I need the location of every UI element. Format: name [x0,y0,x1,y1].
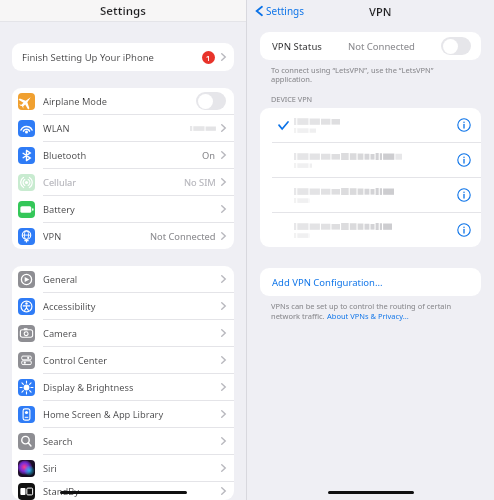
staticText: About VPNs & Privacy... [327,311,409,321]
button[interactable]: Search [12,428,234,454]
staticText: General [43,273,78,286]
staticText: Airplane Mode [43,95,107,108]
button[interactable]: Control Center [12,347,234,373]
button[interactable]: Siri [12,455,234,481]
staticText: Display & Brightness [43,381,134,394]
staticText: Add VPN Configuration... [272,276,383,289]
button[interactable]: Toggle [196,92,226,110]
staticText: Settings [100,3,146,19]
button[interactable]: Accessibility [12,293,234,319]
button[interactable]: Toggle [441,37,471,55]
button[interactable]: More Info [457,223,471,237]
button[interactable]: General [12,266,234,292]
button[interactable]: Finish Setting Up Your iPhone [12,43,234,71]
button[interactable]: Airplane Mode [12,88,234,114]
button[interactable]: More Info [260,143,481,177]
button[interactable]: Cellular [12,169,234,195]
staticText: Battery [43,203,75,216]
staticText: DEVICE VPN [271,94,313,104]
button[interactable]: Add VPN Configuration... [260,268,481,296]
button[interactable]: More Info [260,178,481,212]
staticText: Cellular [43,176,77,189]
button[interactable]: WLAN [12,115,234,141]
staticText: No SIM [184,176,216,189]
staticText: VPN [43,230,62,243]
button[interactable]: Battery [12,196,234,222]
button[interactable]: Home Screen & App Library [12,401,234,427]
staticText: 1 [206,53,211,63]
button[interactable]: More Info [260,108,481,142]
staticText: WLAN [43,122,70,135]
staticText: VPN Status [272,40,322,53]
staticText: To connect using “LetsVPN”, use the “Let… [271,65,434,85]
staticText: Control Center [43,354,107,367]
staticText: VPN [369,4,392,19]
staticText: Bluetooth [43,149,87,162]
button[interactable]: More Info [457,188,471,202]
staticText: Not Connected [150,230,216,243]
staticText: VPNs can be set up to control the routin… [271,301,452,311]
staticText: Camera [43,327,77,340]
staticText: On [202,149,216,162]
staticText: Home Screen & App Library [43,408,164,421]
staticText: Search [43,435,73,448]
button[interactable]: More Info [260,213,481,247]
button[interactable]: VPN [12,223,234,249]
staticText: Settings [266,4,305,18]
button[interactable]: More Info [457,153,471,167]
staticText: Not Connected [348,40,415,53]
button[interactable]: Bluetooth [12,142,234,168]
staticText: StandBy [43,485,79,498]
button[interactable]: More Info [457,118,471,132]
staticText: Accessibility [43,300,96,313]
staticText: Siri [43,462,57,475]
button[interactable]: VPN Status [260,32,481,60]
button[interactable]: Display & Brightness [12,374,234,400]
button[interactable]: StandBy [12,482,234,500]
button[interactable]: About VPNs & Privacy... [327,311,409,321]
staticText: Finish Setting Up Your iPhone [22,51,154,64]
button[interactable]: Camera [12,320,234,346]
button[interactable]: Settings [254,2,307,20]
staticText: network traffic. [271,311,327,321]
